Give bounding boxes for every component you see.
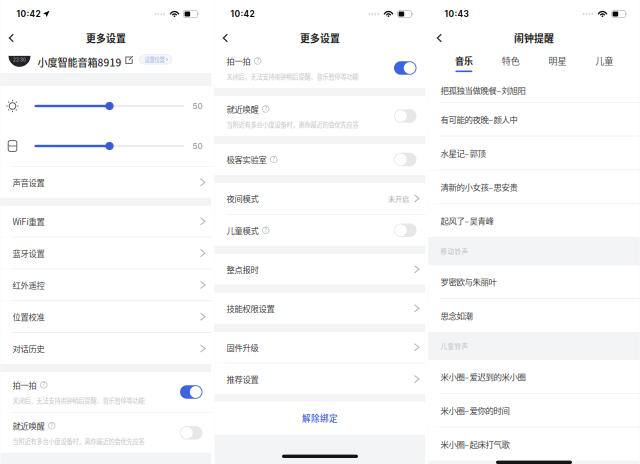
staticText: 10:43 <box>444 9 468 19</box>
staticText: 移动铃声 <box>440 246 468 256</box>
staticText: 对话历史 <box>12 342 44 354</box>
button[interactable]: 罗密欧与朱丽叶 <box>428 265 639 298</box>
button[interactable]: 音乐 <box>440 48 487 78</box>
staticText: 声音设置 <box>12 176 44 188</box>
staticText: 整点报时 <box>226 263 258 275</box>
staticText: 夜间模式 <box>226 192 258 204</box>
staticText: ? <box>42 381 45 388</box>
button[interactable]: 儿童模式 <box>214 215 425 246</box>
button[interactable]: 固件升级 <box>214 332 425 363</box>
button[interactable]: 对话历史 <box>0 333 211 364</box>
staticText: 10:42 <box>230 9 254 19</box>
button[interactable]: 米小圈–爱你的时间 <box>428 394 639 427</box>
staticText: 水星记–郭顶 <box>440 147 485 159</box>
button[interactable]: 清新的小女孩–思安贵 <box>428 170 639 203</box>
button[interactable]: 夜间模式 <box>214 183 425 214</box>
staticText: 思念如潮 <box>440 309 472 322</box>
staticText: 米小圈–爱迟到的米小圈 <box>440 370 525 383</box>
staticText: ? <box>256 57 259 64</box>
staticText: 解除绑定 <box>302 412 338 424</box>
button[interactable]: 有可能的夜晚–颜人中 <box>428 103 639 136</box>
staticText: 固件升级 <box>226 341 258 353</box>
staticText: 22:30 <box>13 57 26 63</box>
button[interactable]: 技能权限设置 <box>214 293 425 324</box>
staticText: 10:42 <box>16 9 40 19</box>
staticText: 关闭后，无法支持闹钟稍后提醒、音乐暂停等功能 <box>226 72 358 81</box>
staticText: ? <box>264 227 267 233</box>
staticText: 拍一拍 <box>12 379 36 391</box>
staticText: 儿童 <box>595 54 613 67</box>
staticText: 技能权限设置 <box>226 302 274 314</box>
button[interactable]: 极客实验室 <box>214 144 425 175</box>
staticText: 有可能的夜晚–颜人中 <box>440 113 517 125</box>
staticText: 音乐 <box>455 54 473 67</box>
staticText: 当附近有多台小度设备时，离你最近的会优先应答 <box>226 120 358 129</box>
button[interactable]: 特色 <box>487 48 534 78</box>
button[interactable]: 整点报时 <box>214 254 425 285</box>
staticText: 罗密欧与朱丽叶 <box>440 276 496 288</box>
button[interactable]: 思念如潮 <box>428 299 639 332</box>
button[interactable]: 设置位置 <box>133 52 172 64</box>
staticText: ? <box>272 156 275 163</box>
button[interactable]: Back <box>214 28 248 48</box>
button[interactable]: 把孤独当做晚餐–刘旭阳 <box>428 78 639 102</box>
staticText: 位置校准 <box>12 311 44 323</box>
staticText: 明星 <box>548 54 566 67</box>
button[interactable]: 解除绑定 <box>214 402 425 435</box>
staticText: 就近唤醒 <box>226 103 258 115</box>
staticText: 关闭后，无法支持闹钟稍后提醒、音乐暂停等功能 <box>12 396 144 405</box>
staticText: 闹钟提醒 <box>514 31 554 45</box>
button[interactable]: 就近唤醒 <box>0 413 211 453</box>
staticText: 设置位置 <box>144 55 164 63</box>
button[interactable]: 就近唤醒 <box>214 96 425 136</box>
staticText: 当附近有多台小度设备时，离你最近的会优先应答 <box>12 437 144 446</box>
button[interactable]: Back <box>428 28 462 48</box>
button[interactable]: 推荐设置 <box>214 364 425 395</box>
staticText: 50 <box>192 101 202 111</box>
staticText: 未开启 <box>388 193 409 204</box>
button[interactable]: WiFi重置 <box>0 206 211 237</box>
button[interactable]: 声音设置 <box>0 167 211 198</box>
button[interactable]: 米小圈–爱迟到的米小圈 <box>428 360 639 393</box>
staticText: ? <box>50 422 53 429</box>
staticText: 米小圈–起床打气歌 <box>440 438 509 450</box>
staticText: 拍一拍 <box>226 55 250 67</box>
button[interactable]: 红外遥控 <box>0 269 211 300</box>
staticText: 推荐设置 <box>226 373 258 385</box>
staticText: 清新的小女孩–思安贵 <box>440 181 517 193</box>
staticText: 起风了–吴青峰 <box>440 215 493 227</box>
staticText: 把孤独当做晚餐–刘旭阳 <box>440 84 525 96</box>
staticText: 小度智能音箱8919 <box>37 55 121 69</box>
button[interactable]: 儿童 <box>581 48 628 78</box>
button[interactable]: Rename device <box>121 52 133 65</box>
staticText: 儿童模式 <box>226 224 258 236</box>
staticText: 红外遥控 <box>12 279 44 291</box>
button[interactable]: 米小圈–起床打气歌 <box>428 428 639 461</box>
button[interactable]: 明星 <box>534 48 581 78</box>
staticText: 特色 <box>502 54 520 67</box>
staticText: 更多设置 <box>86 31 126 45</box>
staticText: 极客实验室 <box>226 153 266 165</box>
staticText: 蓝牙设置 <box>12 247 44 259</box>
button[interactable]: 拍一拍 <box>214 48 425 88</box>
staticText: 米小圈–爱你的时间 <box>440 404 509 416</box>
staticText: ? <box>264 105 267 112</box>
button[interactable]: 蓝牙设置 <box>0 238 211 269</box>
button[interactable]: 拍一拍 <box>0 372 211 412</box>
button[interactable]: 起风了–吴青峰 <box>428 204 639 237</box>
staticText: WiFi重置 <box>12 215 44 227</box>
button[interactable]: 水星记–郭顶 <box>428 137 639 170</box>
button[interactable]: 位置校准 <box>0 301 211 332</box>
button[interactable]: Back <box>0 28 34 48</box>
staticText: 儿童铃声 <box>440 341 468 351</box>
staticText: 更多设置 <box>300 31 340 45</box>
staticText: 50 <box>192 141 202 151</box>
staticText: 就近唤醒 <box>12 420 44 432</box>
